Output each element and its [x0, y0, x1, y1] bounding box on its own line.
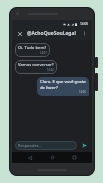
staticText: Vamos conversar? [18, 62, 54, 68]
button[interactable]: Close [15, 29, 24, 38]
staticText: Claro. E que você gosta de fazer? [40, 79, 86, 90]
button[interactable]: Claro. E que você gosta de fazer? [37, 77, 89, 96]
staticText: Responder... [18, 143, 41, 148]
staticText: 14:01 [40, 51, 47, 55]
button[interactable]: Recent apps [69, 152, 80, 163]
button[interactable]: Send [80, 141, 89, 150]
staticText: 14:02 [47, 68, 54, 72]
staticText: @AchoQueSouLegal [27, 30, 80, 37]
staticText: Oi. Tudo bem? [18, 45, 47, 51]
button[interactable]: Home [47, 152, 58, 163]
button[interactable]: More options [80, 29, 89, 38]
staticText: 14:05 [79, 90, 86, 94]
staticText: 14:05 [80, 22, 89, 26]
button[interactable]: Responder... [15, 141, 77, 150]
button[interactable]: Back [24, 152, 35, 163]
button[interactable]: Vamos conversar? [15, 60, 57, 74]
button[interactable]: Oi. Tudo bem? [15, 43, 50, 57]
